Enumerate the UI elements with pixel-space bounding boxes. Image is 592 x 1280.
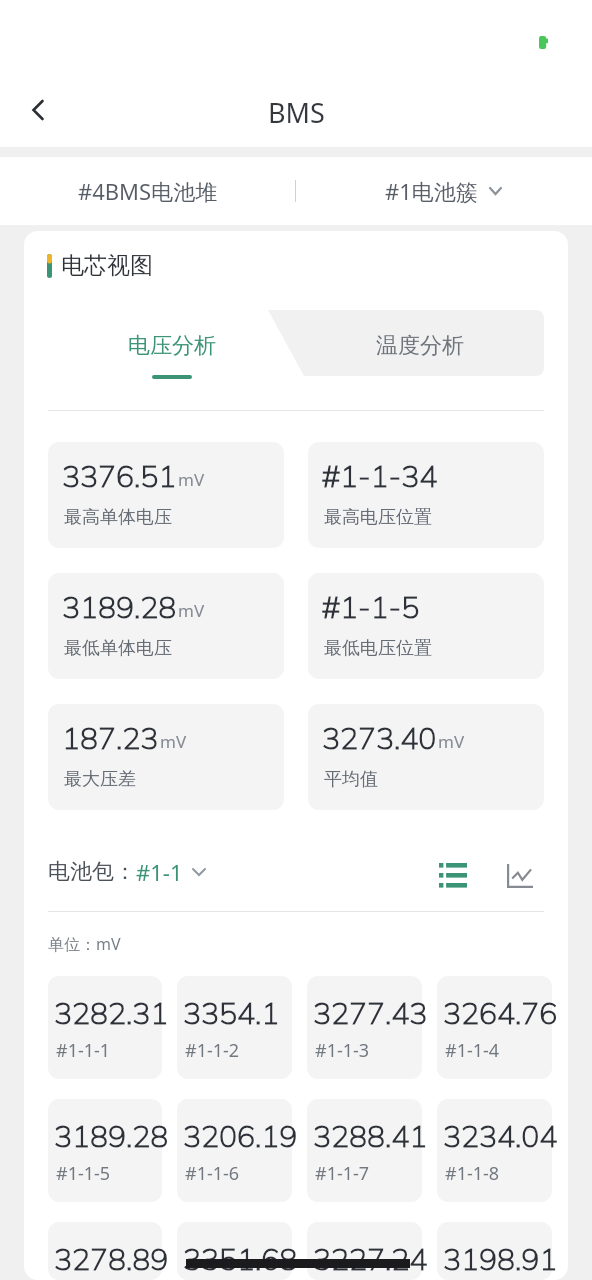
staticText: 最大压差	[64, 768, 136, 791]
staticText: 3198.91	[443, 1240, 558, 1278]
staticText: 3189.28	[54, 1117, 168, 1155]
staticText: 3376.51	[62, 457, 177, 495]
staticText: 电芯视图	[61, 251, 153, 280]
staticText: #1-1-2	[185, 1038, 240, 1063]
staticText: 187.23	[62, 719, 159, 757]
staticText: #4BMS电池堆	[78, 176, 218, 206]
button[interactable]	[437, 1099, 552, 1202]
button[interactable]	[307, 976, 422, 1079]
button[interactable]: #1-1-5	[308, 573, 544, 679]
staticText: #1-1-5	[322, 588, 420, 626]
staticText: 3288.41	[313, 1117, 428, 1155]
button[interactable]: 3376.51	[48, 442, 284, 548]
button[interactable]: #4BMS电池堆	[0, 157, 295, 225]
button[interactable]	[177, 1222, 292, 1280]
button[interactable]: 3189.28	[48, 573, 284, 679]
staticText: mV	[178, 599, 205, 622]
staticText: 平均值	[324, 768, 378, 791]
staticText: #1-1-34	[322, 457, 438, 495]
staticText: 3278.89	[54, 1240, 168, 1278]
button[interactable]	[48, 1099, 162, 1202]
staticText: 最高电压位置	[324, 506, 432, 529]
staticText: 3277.43	[313, 994, 428, 1032]
staticText: #1-1-3	[315, 1038, 370, 1063]
staticText: BMS	[268, 94, 325, 131]
staticText: 3282.31	[54, 994, 168, 1032]
button[interactable]: 电池包：	[48, 857, 206, 887]
button[interactable]	[437, 976, 552, 1079]
staticText: mV	[438, 730, 465, 753]
staticText: 3264.76	[443, 994, 558, 1032]
staticText: 3234.04	[443, 1117, 558, 1155]
staticText: mV	[178, 468, 205, 491]
button[interactable]	[437, 1222, 552, 1280]
button[interactable]	[307, 1222, 422, 1280]
button[interactable]	[177, 976, 292, 1079]
staticText: 最低单体电压	[64, 637, 172, 660]
button[interactable]	[307, 1099, 422, 1202]
button[interactable]: #1电池簇	[295, 157, 592, 225]
button[interactable]: 187.23	[48, 704, 284, 810]
staticText: 电压分析	[128, 332, 216, 360]
staticText: 3206.19	[183, 1117, 298, 1155]
staticText: #1-1-4	[445, 1038, 500, 1063]
staticText: 3227.24	[313, 1240, 428, 1278]
staticText: #1-1-8	[445, 1161, 500, 1186]
button[interactable]: 温度分析	[296, 310, 544, 376]
button[interactable]: List view	[435, 858, 471, 892]
staticText: 单位：mV	[48, 933, 121, 955]
staticText: 3189.28	[62, 588, 177, 626]
staticText: #1电池簇	[385, 176, 478, 206]
staticText: 温度分析	[376, 332, 464, 360]
button[interactable]	[48, 1222, 162, 1280]
staticText: mV	[160, 730, 187, 753]
staticText: #1-1-6	[185, 1161, 240, 1186]
staticText: 3351.68	[183, 1240, 298, 1278]
staticText: 3354.1	[183, 994, 280, 1032]
staticText: 3273.40	[322, 719, 437, 757]
button[interactable]: Chart view	[502, 859, 538, 893]
staticText: #1-1-1	[56, 1038, 111, 1063]
staticText: #1-1-7	[315, 1161, 370, 1186]
button[interactable]: #1-1-34	[308, 442, 544, 548]
button[interactable]	[177, 1099, 292, 1202]
button[interactable]: Back	[15, 88, 59, 132]
staticText: 最高单体电压	[64, 506, 172, 529]
button[interactable]: 电压分析	[48, 310, 296, 376]
button[interactable]	[48, 976, 162, 1079]
staticText: #1-1-5	[56, 1161, 111, 1186]
staticText: #1-1	[136, 857, 183, 887]
staticText: 最低电压位置	[324, 637, 432, 660]
button[interactable]: 3273.40	[308, 704, 544, 810]
staticText: 电池包：	[48, 858, 136, 886]
